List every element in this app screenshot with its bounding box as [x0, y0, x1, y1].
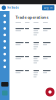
- button[interactable]: Log in: [42, 5, 54, 10]
- button[interactable]: Navigation item: [0, 38, 9, 44]
- button[interactable]: Navigation item: [0, 57, 9, 64]
- staticText: Log in: [44, 6, 53, 9]
- staticText: FinTrade: [7, 6, 19, 9]
- button[interactable]: Navigation item: [0, 19, 9, 25]
- staticText: Trade operations: [15, 14, 48, 20]
- button[interactable]: Navigation item: [0, 64, 9, 70]
- button[interactable]: Support chat: [45, 87, 54, 96]
- button[interactable]: Navigation item: [0, 25, 9, 32]
- button[interactable]: Navigation item: [0, 51, 9, 57]
- button[interactable]: Navigation item: [0, 12, 9, 19]
- button[interactable]: Profile: [2, 90, 8, 95]
- button[interactable]: Navigation item: [0, 44, 9, 51]
- button[interactable]: Navigation item: [0, 32, 9, 38]
